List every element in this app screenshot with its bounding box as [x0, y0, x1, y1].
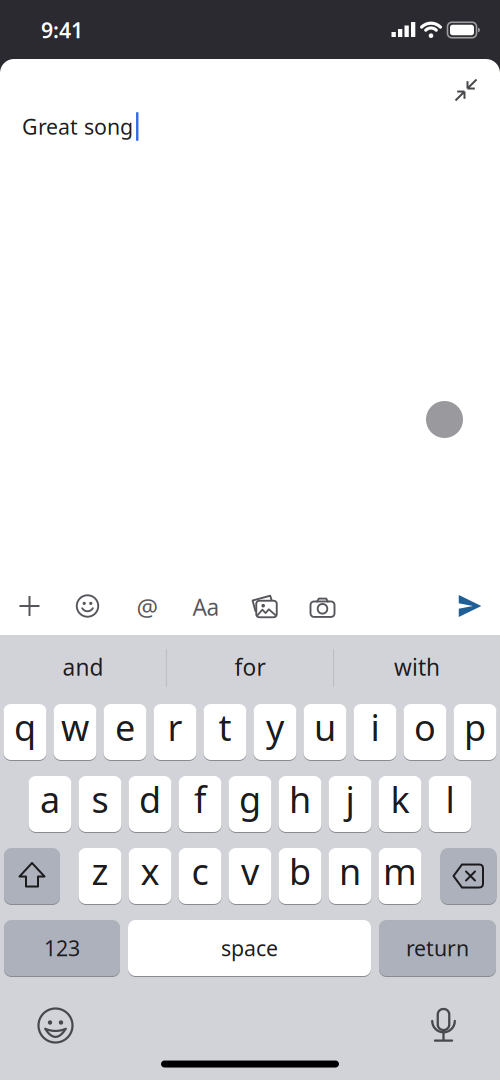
button[interactable]: n: [328, 848, 371, 905]
button[interactable]: p: [453, 704, 496, 761]
button[interactable]: Aa: [182, 591, 230, 623]
button[interactable]: [18, 595, 40, 617]
button[interactable]: with: [342, 639, 492, 695]
staticText: @: [136, 591, 158, 623]
staticText: r: [167, 703, 182, 751]
button[interactable]: q: [3, 704, 46, 761]
button[interactable]: a: [28, 776, 71, 833]
button[interactable]: s: [78, 776, 121, 833]
button[interactable]: for: [175, 639, 325, 695]
button[interactable]: 123: [4, 920, 120, 977]
button[interactable]: h: [278, 776, 321, 833]
button[interactable]: m: [378, 848, 421, 905]
staticText: i: [370, 703, 379, 751]
staticText: w: [61, 703, 89, 751]
staticText: f: [194, 775, 206, 823]
button[interactable]: return: [379, 920, 496, 977]
button[interactable]: r: [153, 704, 196, 761]
button[interactable]: z: [78, 848, 121, 905]
staticText: h: [289, 775, 311, 823]
button[interactable]: u: [303, 704, 346, 761]
button[interactable]: [458, 594, 482, 617]
staticText: m: [383, 847, 417, 895]
staticText: and: [62, 652, 103, 682]
button[interactable]: Great song: [22, 106, 478, 146]
button[interactable]: e: [103, 704, 146, 761]
staticText: z: [91, 847, 108, 895]
staticText: t: [218, 703, 231, 751]
staticText: e: [115, 703, 135, 751]
button[interactable]: [430, 1007, 456, 1043]
staticText: c: [191, 847, 208, 895]
staticText: k: [390, 775, 409, 823]
staticText: s: [91, 775, 108, 823]
button[interactable]: [251, 593, 278, 619]
button[interactable]: space: [128, 920, 371, 977]
button[interactable]: d: [128, 776, 171, 833]
button[interactable]: f: [178, 776, 221, 833]
staticText: o: [414, 703, 436, 751]
button[interactable]: t: [203, 704, 246, 761]
staticText: space: [221, 934, 278, 962]
staticText: l: [445, 775, 454, 823]
button[interactable]: [309, 597, 335, 617]
staticText: Aa: [192, 592, 219, 622]
button[interactable]: x: [128, 848, 171, 905]
button[interactable]: [440, 848, 496, 905]
button[interactable]: o: [403, 704, 446, 761]
staticText: for: [234, 652, 265, 682]
button[interactable]: k: [378, 776, 421, 833]
staticText: j: [345, 775, 354, 823]
button[interactable]: [451, 75, 481, 105]
button[interactable]: l: [428, 776, 471, 833]
staticText: y: [266, 703, 284, 751]
staticText: n: [339, 847, 361, 895]
button[interactable]: w: [53, 704, 96, 761]
staticText: q: [14, 703, 36, 751]
staticText: x: [140, 847, 159, 895]
button[interactable]: i: [353, 704, 396, 761]
button[interactable]: [75, 594, 99, 618]
button[interactable]: y: [253, 704, 296, 761]
staticText: v: [241, 847, 259, 895]
staticText: g: [239, 775, 261, 823]
button[interactable]: c: [178, 848, 221, 905]
staticText: d: [139, 775, 161, 823]
button[interactable]: @: [132, 592, 162, 622]
button[interactable]: j: [328, 776, 371, 833]
staticText: p: [464, 703, 486, 751]
staticText: a: [40, 775, 60, 823]
staticText: 123: [44, 934, 80, 962]
button[interactable]: [4, 848, 60, 905]
staticText: u: [314, 703, 336, 751]
button[interactable]: b: [278, 848, 321, 905]
button[interactable]: v: [228, 848, 271, 905]
button[interactable]: [36, 1006, 74, 1044]
button[interactable]: g: [228, 776, 271, 833]
staticText: return: [406, 934, 469, 962]
staticText: b: [289, 847, 311, 895]
staticText: with: [394, 652, 440, 682]
staticText: 9:41: [41, 16, 83, 44]
staticText: Great song: [22, 112, 133, 141]
button[interactable]: and: [8, 639, 158, 695]
